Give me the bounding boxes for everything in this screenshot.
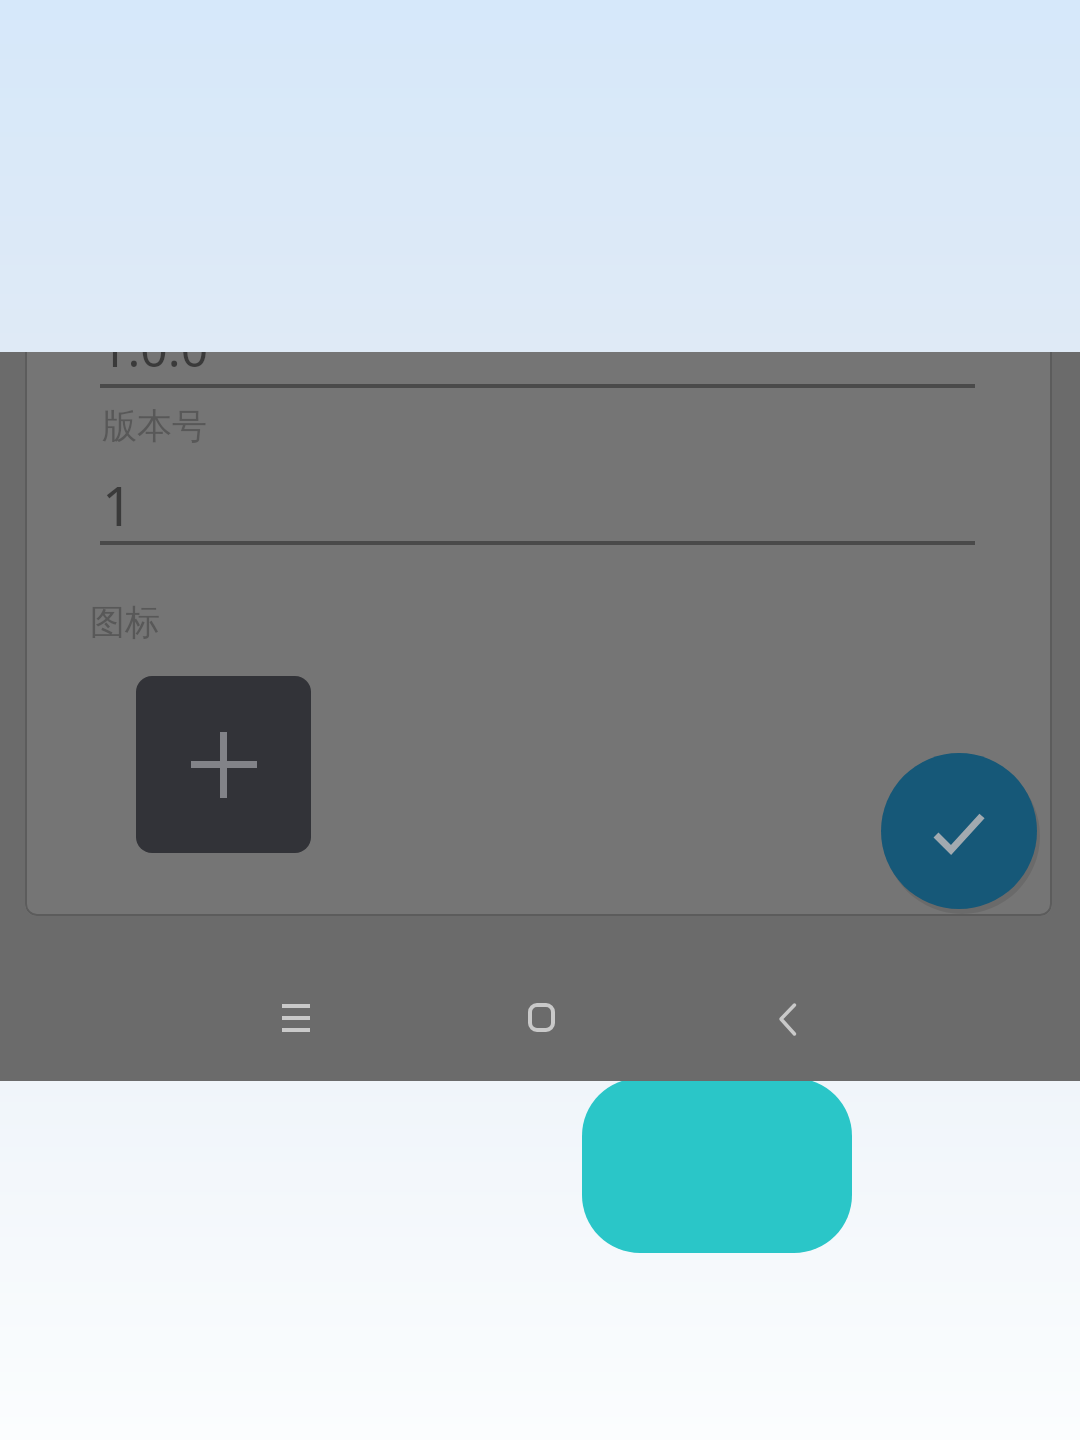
- staticText: 1: [102, 468, 133, 542]
- staticText: 图标: [90, 600, 160, 644]
- button[interactable]: [775, 1001, 801, 1035]
- button[interactable]: [136, 676, 311, 853]
- button[interactable]: [881, 753, 1037, 909]
- button[interactable]: [528, 1003, 555, 1032]
- button[interactable]: [582, 1078, 852, 1253]
- staticText: 版本号: [102, 404, 207, 448]
- staticText: 1.0.0: [100, 352, 209, 381]
